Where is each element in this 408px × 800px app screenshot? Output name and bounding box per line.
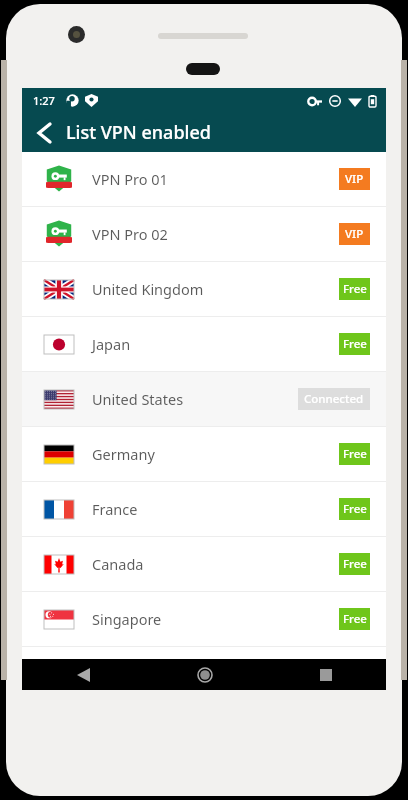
button[interactable]: United Kingdom bbox=[22, 262, 386, 316]
staticText: Free bbox=[343, 556, 367, 572]
staticText: Free bbox=[343, 446, 367, 462]
staticText: VIP bbox=[345, 171, 364, 187]
staticText: Free bbox=[343, 281, 367, 297]
button[interactable]: Back bbox=[22, 659, 144, 690]
button[interactable]: VPN Pro 01 bbox=[22, 152, 386, 206]
staticText: VPN Pro 01 bbox=[92, 169, 339, 189]
staticText: France bbox=[92, 499, 339, 519]
button[interactable]: Free bbox=[339, 278, 370, 300]
button[interactable]: United States bbox=[22, 372, 386, 426]
staticText: VIP bbox=[345, 226, 364, 242]
button[interactable]: France bbox=[22, 482, 386, 536]
button[interactable]: Back bbox=[22, 113, 66, 152]
staticText: Canada bbox=[92, 554, 339, 574]
button[interactable]: Free bbox=[339, 553, 370, 575]
button[interactable]: Connected bbox=[298, 388, 370, 410]
staticText: Japan bbox=[92, 334, 339, 354]
button[interactable]: Free bbox=[339, 498, 370, 520]
button[interactable]: Germany bbox=[22, 427, 386, 481]
staticText: United States bbox=[92, 389, 298, 409]
button[interactable]: Home bbox=[144, 659, 265, 690]
staticText: Free bbox=[343, 501, 367, 517]
button[interactable]: Recent apps bbox=[265, 659, 386, 690]
button[interactable]: Free bbox=[339, 443, 370, 465]
button[interactable]: Singapore bbox=[22, 592, 386, 646]
staticText: United Kingdom bbox=[92, 279, 339, 299]
staticText: Free bbox=[343, 611, 367, 627]
staticText: Germany bbox=[92, 444, 339, 464]
staticText: VPN Pro 02 bbox=[92, 224, 339, 244]
button[interactable]: Canada bbox=[22, 537, 386, 591]
staticText: 1:27 bbox=[33, 93, 55, 108]
button[interactable]: Free bbox=[339, 608, 370, 630]
staticText: Free bbox=[343, 336, 367, 352]
staticText: Singapore bbox=[92, 609, 339, 629]
staticText: Connected bbox=[304, 391, 364, 407]
button[interactable]: VIP bbox=[339, 168, 370, 190]
staticText: List VPN enabled bbox=[66, 120, 211, 145]
button[interactable]: Free bbox=[339, 333, 370, 355]
button[interactable]: Japan bbox=[22, 317, 386, 371]
button[interactable]: VPN Pro 02 bbox=[22, 207, 386, 261]
button[interactable]: VIP bbox=[339, 223, 370, 245]
